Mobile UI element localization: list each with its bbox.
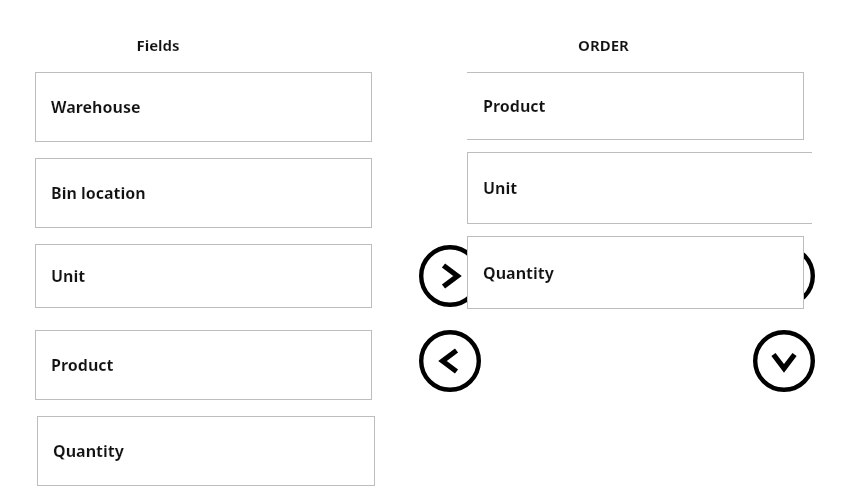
- button[interactable]: Product: [467, 72, 804, 140]
- button[interactable]: Move field to order: [419, 245, 481, 307]
- staticText: Warehouse: [51, 96, 141, 118]
- button[interactable]: Quantity: [467, 236, 804, 309]
- staticText: ORDER: [578, 35, 629, 55]
- staticText: Bin location: [51, 182, 146, 204]
- button[interactable]: Unit: [467, 152, 812, 224]
- staticText: Unit: [483, 177, 518, 199]
- button[interactable]: Product: [35, 330, 372, 400]
- button[interactable]: Bin location: [35, 158, 372, 228]
- staticText: Product: [483, 95, 546, 117]
- button[interactable]: Unit: [35, 244, 372, 308]
- staticText: Quantity: [483, 262, 554, 284]
- staticText: Product: [51, 354, 114, 376]
- button[interactable]: Remove field from order: [419, 330, 481, 392]
- button[interactable]: Warehouse: [35, 72, 372, 142]
- staticText: Quantity: [53, 440, 124, 462]
- button[interactable]: Quantity: [37, 416, 375, 486]
- staticText: Fields: [136, 35, 180, 55]
- staticText: Unit: [51, 265, 86, 287]
- button[interactable]: Move down: [753, 330, 815, 392]
- button[interactable]: Move up: [753, 245, 815, 307]
